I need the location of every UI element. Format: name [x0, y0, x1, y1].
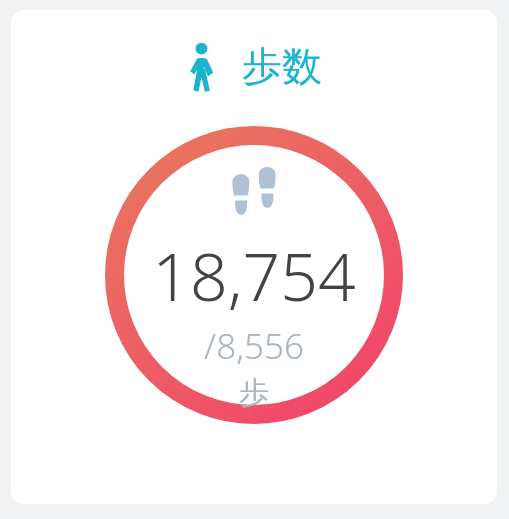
button[interactable]: Steps — [11, 10, 497, 504]
other: Footprints — [226, 164, 282, 218]
staticText: 18,754 — [105, 230, 403, 320]
staticText: /8,556 — [105, 322, 403, 370]
staticText: 歩数 — [242, 41, 322, 91]
other: Steps — [186, 40, 220, 92]
staticText: 歩 — [105, 374, 403, 412]
